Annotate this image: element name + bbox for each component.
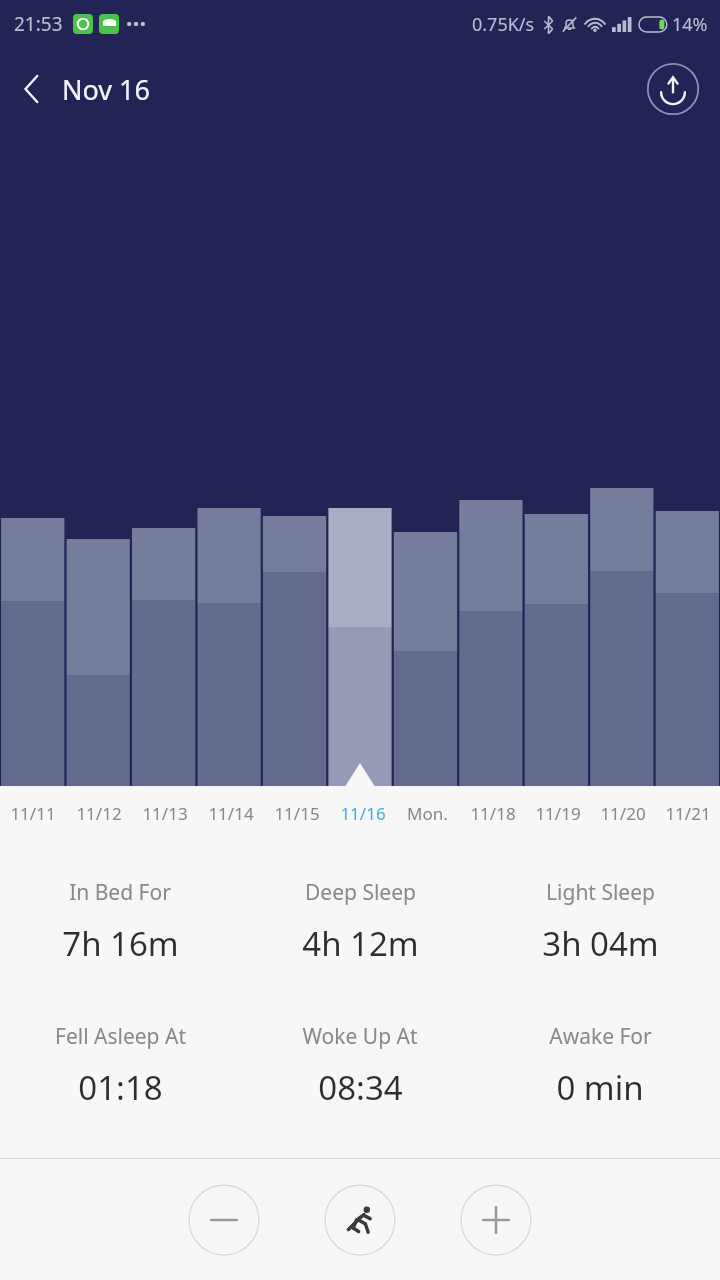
staticText: 11/20 [600, 802, 646, 825]
button[interactable]: 11/18 [460, 802, 525, 825]
button[interactable]: In Bed For [0, 878, 240, 966]
staticText: 0.75K/s [472, 12, 535, 37]
button[interactable]: Light Sleep [480, 878, 720, 966]
button[interactable]: Awake For [480, 1022, 720, 1110]
staticText: 4h 12m [302, 921, 419, 966]
staticText: 3h 04m [542, 921, 659, 966]
staticText: 01:18 [78, 1065, 163, 1110]
button[interactable]: Activity [324, 1184, 396, 1256]
button[interactable]: Increase [460, 1184, 532, 1256]
staticText: 11/15 [274, 802, 320, 825]
button[interactable]: 11/13 [132, 802, 198, 825]
button[interactable]: Woke Up At [240, 1022, 480, 1110]
staticText: Deep Sleep [305, 878, 416, 907]
button[interactable]: 11/12 [66, 802, 132, 825]
staticText: Mon. [407, 802, 448, 825]
staticText: 11/16 [340, 802, 386, 825]
staticText: 11/18 [470, 802, 516, 825]
staticText: 11/14 [208, 802, 254, 825]
staticText: In Bed For [69, 878, 171, 907]
button[interactable]: 11/20 [590, 802, 655, 825]
staticText: 7h 16m [62, 921, 179, 966]
button[interactable]: 11/19 [525, 802, 590, 825]
button[interactable]: 11/15 [264, 802, 330, 825]
button[interactable]: 11/16 [330, 802, 395, 825]
button[interactable]: Mon. [395, 802, 460, 825]
staticText: Awake For [549, 1022, 652, 1051]
button[interactable]: 11/21 [655, 802, 720, 825]
staticText: 08:34 [318, 1065, 403, 1110]
staticText: Light Sleep [546, 878, 655, 907]
staticText: 14% [672, 12, 708, 37]
button[interactable]: Share [646, 62, 700, 116]
staticText: 11/21 [665, 802, 711, 825]
button[interactable]: 11/11 [0, 802, 66, 825]
button[interactable]: Fell Asleep At [0, 1022, 240, 1110]
button[interactable]: Back [0, 58, 62, 120]
button[interactable]: 11/14 [198, 802, 264, 825]
staticText: 11/11 [10, 802, 56, 825]
staticText: 11/12 [76, 802, 122, 825]
staticText: 11/19 [535, 802, 581, 825]
staticText: Woke Up At [302, 1022, 418, 1051]
staticText: 21:53 [14, 11, 63, 37]
staticText: 0 min [556, 1065, 644, 1110]
button[interactable]: Decrease [188, 1184, 260, 1256]
button[interactable]: Deep Sleep [240, 878, 480, 966]
staticText: Nov 16 [62, 71, 150, 108]
staticText: Fell Asleep At [55, 1022, 186, 1051]
staticText: 11/13 [142, 802, 188, 825]
